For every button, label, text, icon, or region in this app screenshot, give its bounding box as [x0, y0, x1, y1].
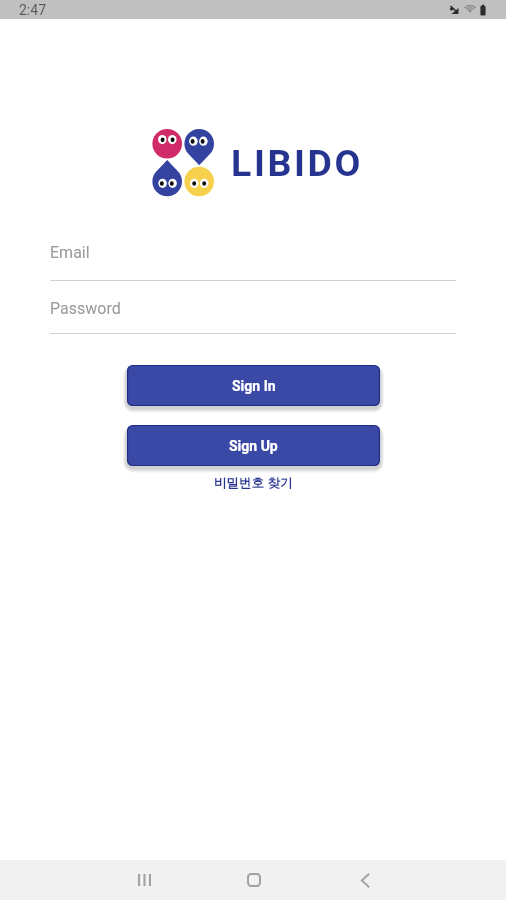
button[interactable]: Password [50, 299, 456, 334]
staticText: Sign Up [229, 438, 278, 454]
staticText: Password [50, 299, 121, 318]
button[interactable]: 비밀번호 찾기 [204, 471, 303, 494]
button[interactable]: Email [50, 243, 456, 281]
staticText: LIBIDO [231, 141, 364, 185]
button[interactable]: Sign Up [127, 425, 380, 466]
button[interactable]: Sign In [127, 365, 380, 406]
button[interactable]: Recent apps [120, 860, 168, 900]
staticText: Sign In [232, 378, 276, 394]
button[interactable]: Home [230, 860, 278, 900]
button[interactable]: Back [341, 860, 389, 900]
staticText: 비밀번호 찾기 [214, 474, 293, 491]
staticText: 2:47 [19, 2, 46, 18]
staticText: Email [50, 243, 90, 262]
